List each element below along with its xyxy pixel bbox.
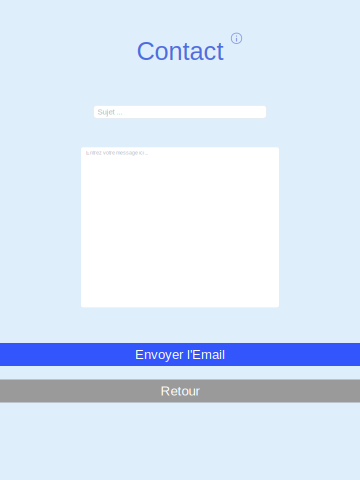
button[interactable]: Envoyer l'Email [0,343,360,366]
button[interactable]: Informations [229,31,243,45]
staticText: Contact [136,37,223,65]
button[interactable]: Sujet ... [93,105,266,118]
staticText: Envoyer l'Email [135,347,225,362]
staticText: Entrez votre message ici ... [86,150,148,156]
button[interactable]: Retour [0,379,360,402]
staticText: Sujet ... [97,107,122,116]
staticText: Retour [160,384,199,398]
